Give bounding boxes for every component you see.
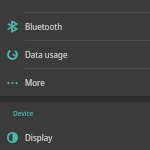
staticText: Data usage: [25, 49, 68, 60]
button[interactable]: Bluetooth: [0, 13, 150, 40]
staticText: Display: [25, 132, 53, 143]
staticText: Bluetooth: [25, 21, 63, 32]
button[interactable]: More: [0, 69, 150, 96]
button[interactable]: Display: [0, 124, 150, 150]
staticText: More: [25, 77, 45, 88]
staticText: Device: [13, 109, 34, 118]
button[interactable]: Data usage: [0, 41, 150, 68]
